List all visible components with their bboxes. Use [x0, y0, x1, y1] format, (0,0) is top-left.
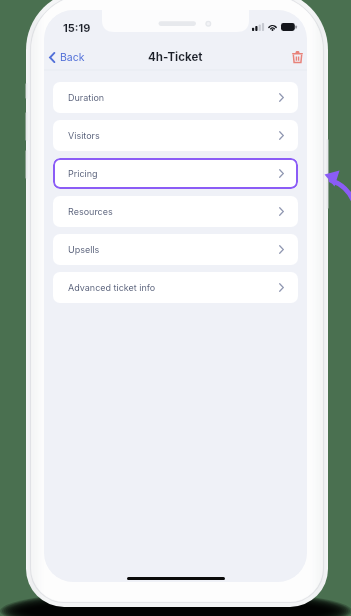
- button[interactable]: Advanced ticket info: [53, 272, 298, 303]
- button[interactable]: Duration: [53, 82, 298, 113]
- staticText: Visitors: [68, 130, 100, 141]
- staticText: 4h-Ticket: [148, 50, 203, 64]
- button[interactable]: Visitors: [53, 120, 298, 151]
- staticText: Pricing: [68, 168, 98, 179]
- button[interactable]: Upsells: [53, 234, 298, 265]
- staticText: Back: [60, 51, 85, 64]
- button[interactable]: Pricing: [53, 158, 298, 189]
- staticText: 15:19: [63, 21, 91, 34]
- staticText: Resources: [68, 206, 113, 217]
- button[interactable]: Resources: [53, 196, 298, 227]
- staticText: Upsells: [68, 244, 100, 255]
- button[interactable]: Back: [44, 48, 91, 67]
- button[interactable]: Delete: [286, 47, 307, 67]
- staticText: Advanced ticket info: [68, 282, 156, 293]
- staticText: Duration: [68, 92, 105, 103]
